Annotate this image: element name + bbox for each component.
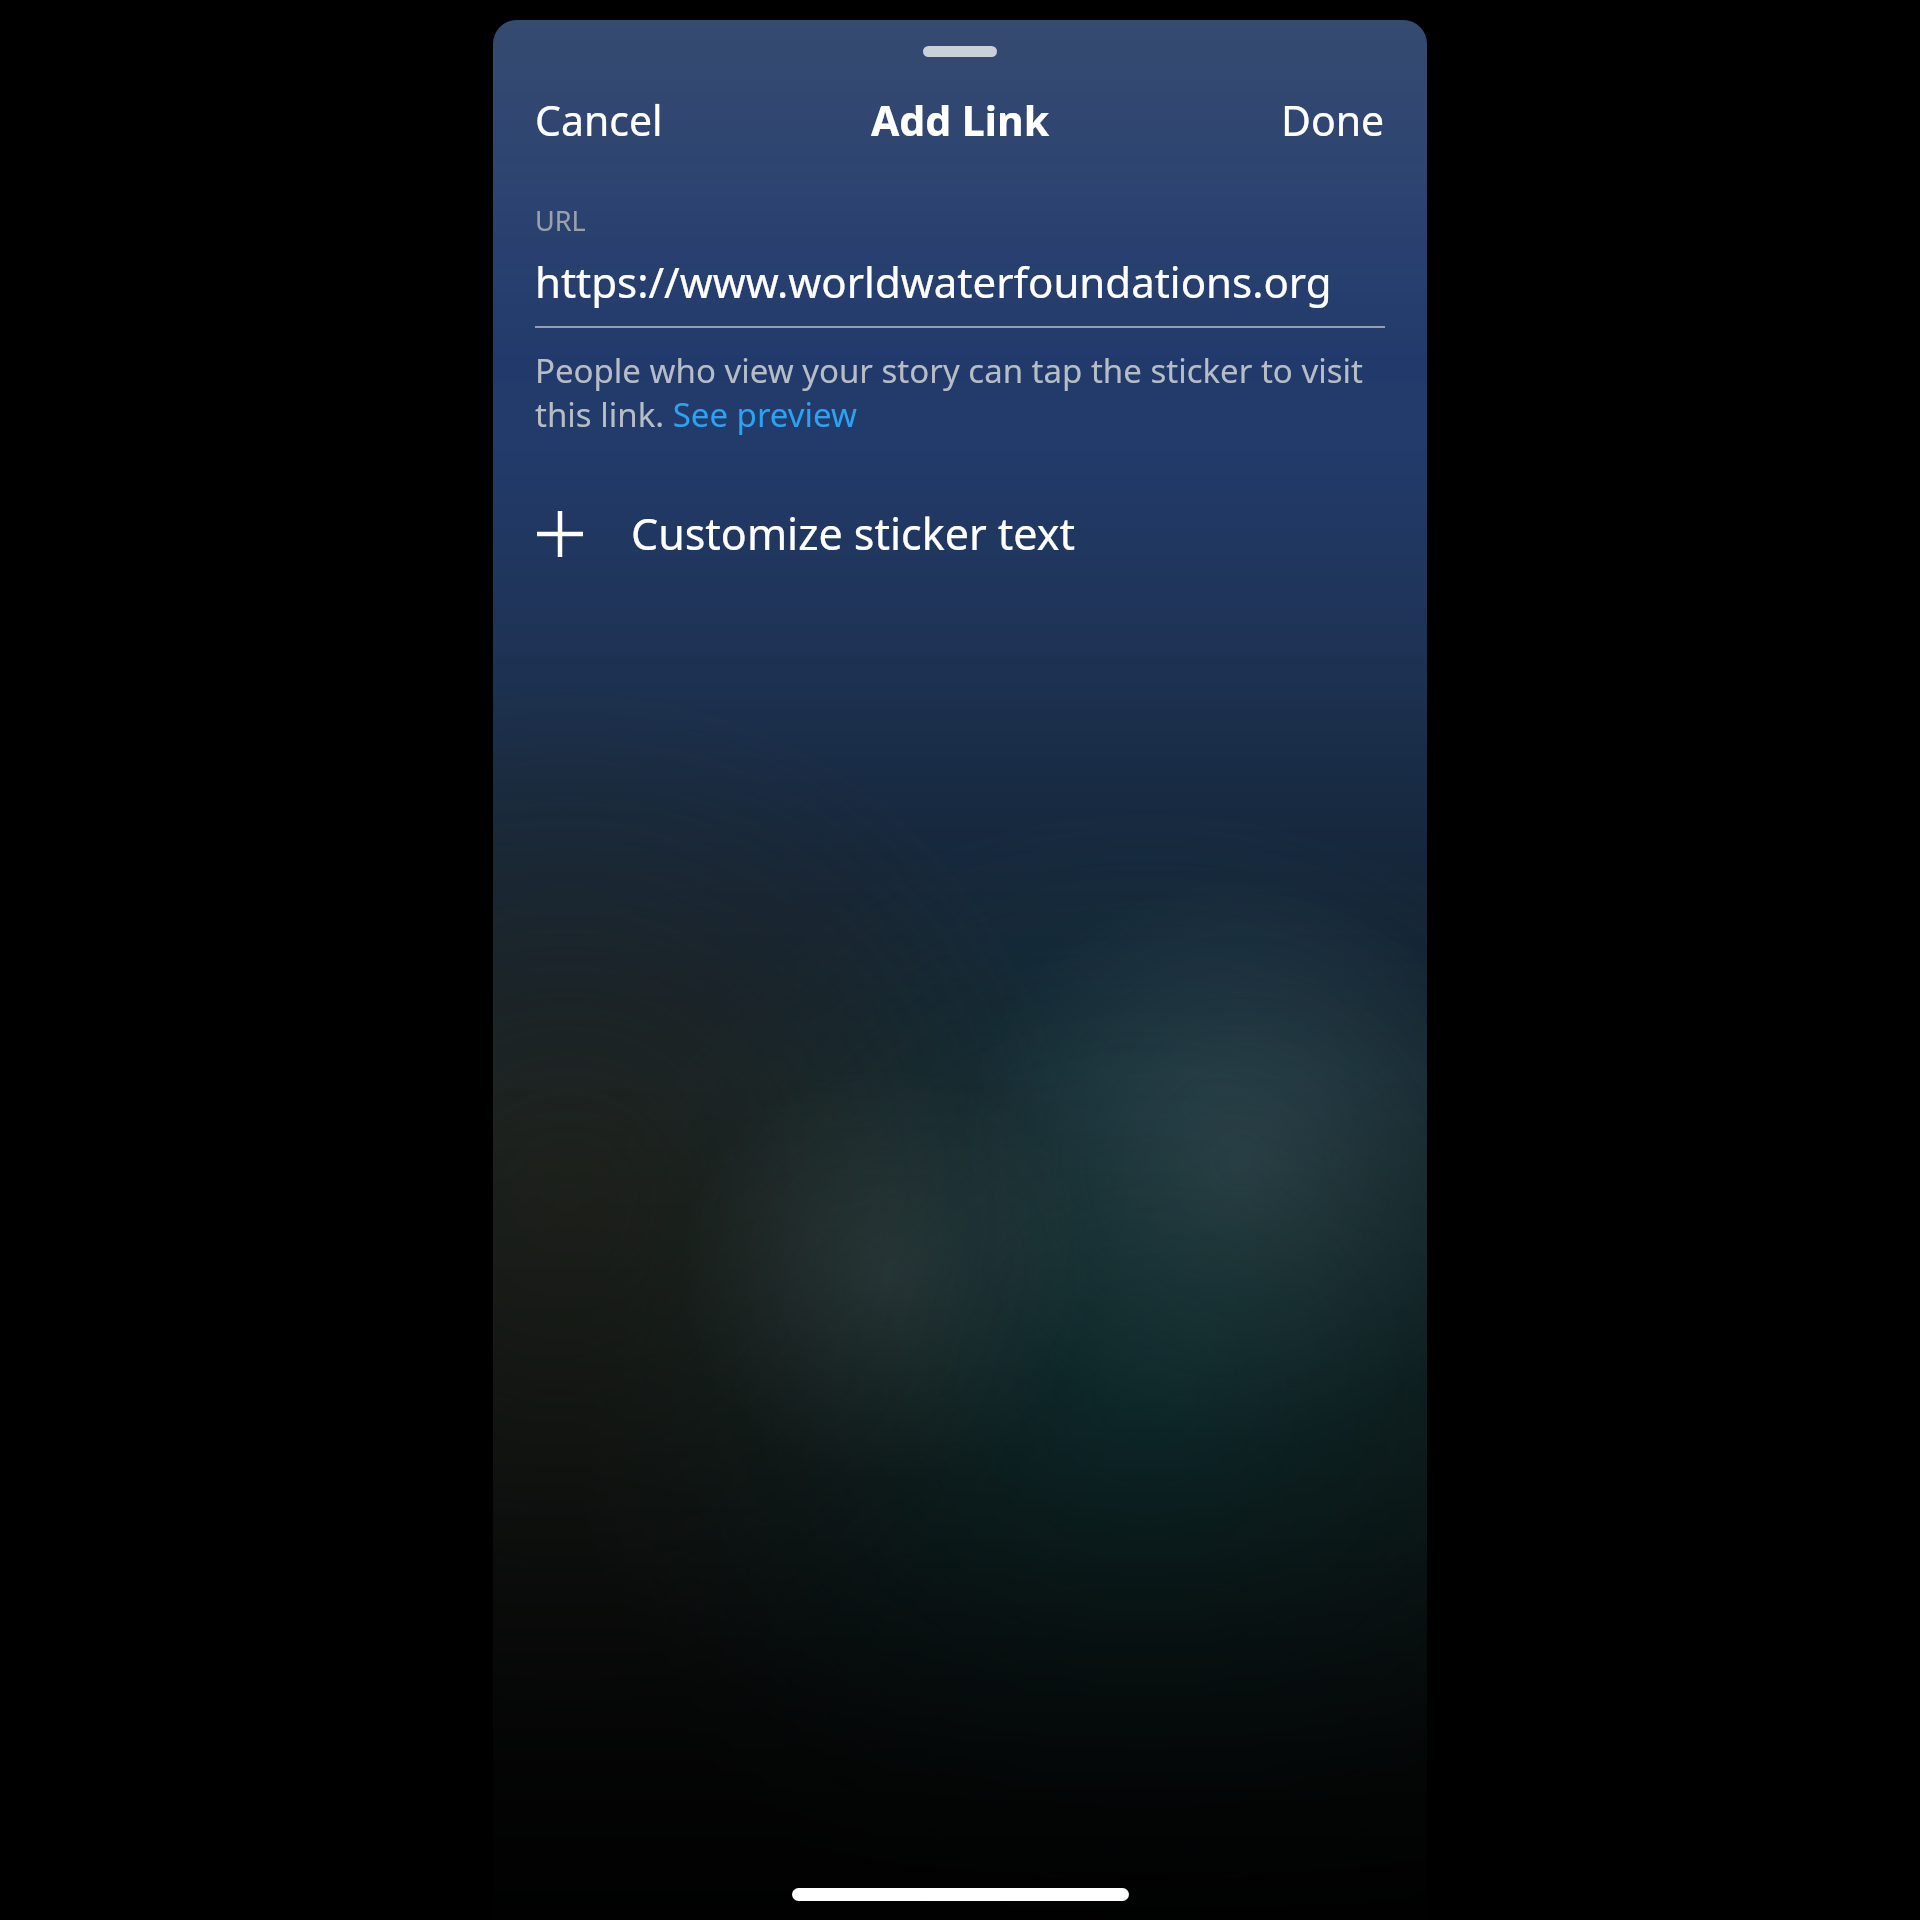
staticText: Customize sticker text	[631, 504, 1076, 563]
staticText: People who view your story can tap the s…	[535, 348, 1385, 436]
staticText: Done	[1281, 92, 1385, 148]
staticText: https://www.worldwaterfoundations.org	[535, 253, 1332, 310]
staticText: URL	[535, 202, 586, 239]
button[interactable]: Add custom sticker text	[493, 494, 1427, 573]
button[interactable]: Cancel	[525, 86, 673, 154]
button[interactable]: Done	[1271, 86, 1395, 154]
other: Add custom sticker text	[535, 509, 585, 559]
staticText: Add Link	[871, 92, 1050, 148]
staticText: Cancel	[535, 92, 663, 148]
button[interactable]: URL	[535, 202, 1385, 328]
